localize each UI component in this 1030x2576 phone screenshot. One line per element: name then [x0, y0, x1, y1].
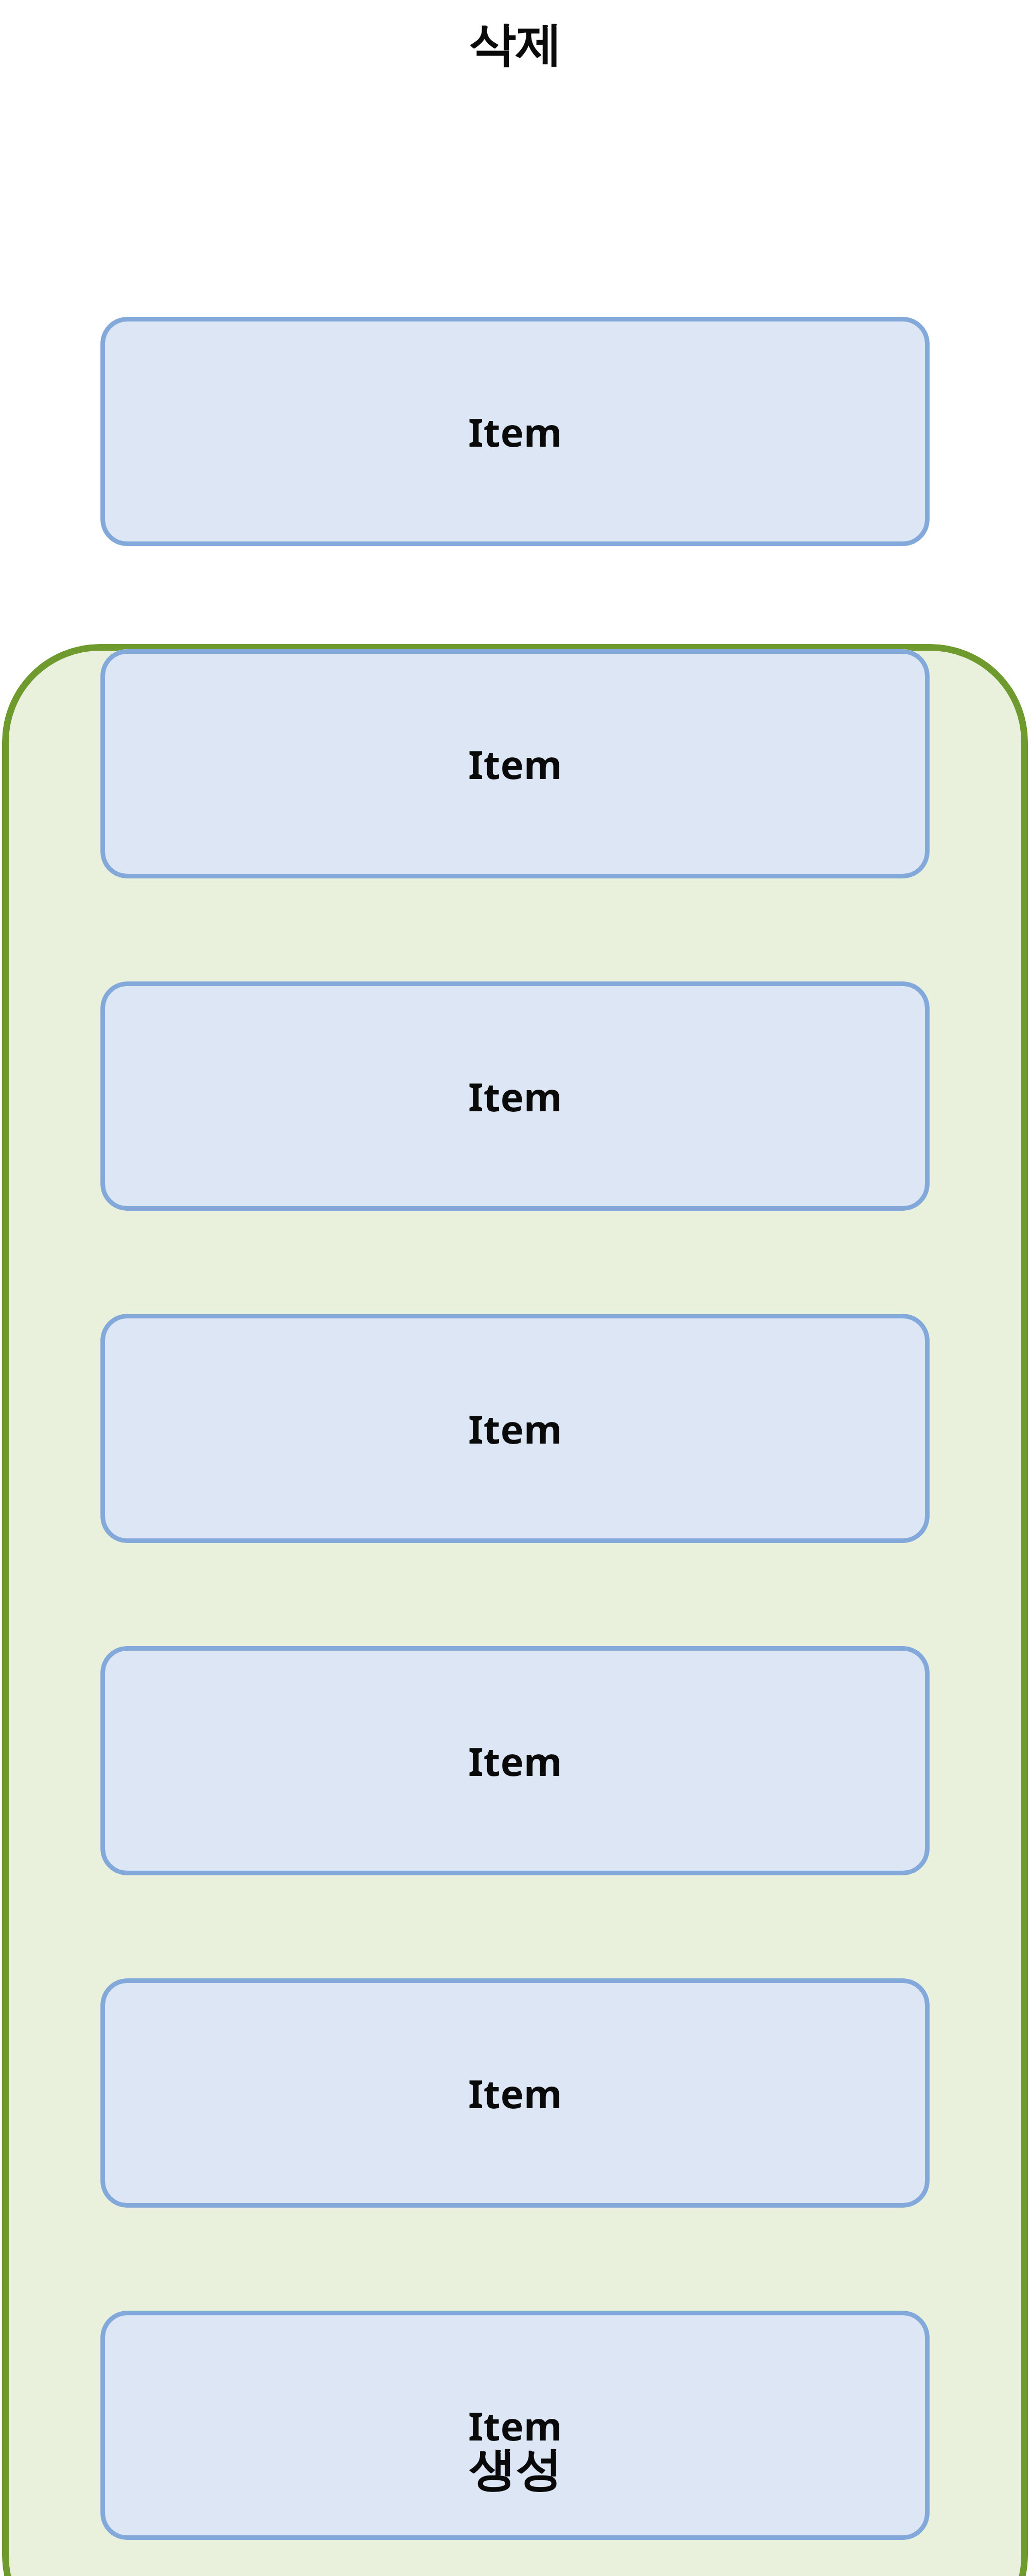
staticText: Item	[468, 2399, 562, 2452]
button[interactable]: 삭제	[469, 15, 561, 74]
button[interactable]: 생성	[469, 2441, 561, 2499]
button[interactable]: Item	[100, 1646, 930, 1875]
button[interactable]: Item	[100, 1978, 930, 2208]
button[interactable]: Item	[100, 1314, 930, 1543]
staticText: Item	[468, 1070, 562, 1123]
button[interactable]: Item	[100, 649, 930, 878]
staticText: Item	[468, 1734, 562, 1788]
button[interactable]: Item	[100, 981, 930, 1211]
staticText: Item	[468, 737, 562, 791]
button[interactable]: Item	[100, 2311, 930, 2540]
staticText: Item	[468, 405, 562, 459]
staticText: Item	[468, 1402, 562, 1455]
staticText: Item	[468, 2066, 562, 2120]
button[interactable]: Item	[100, 317, 930, 546]
